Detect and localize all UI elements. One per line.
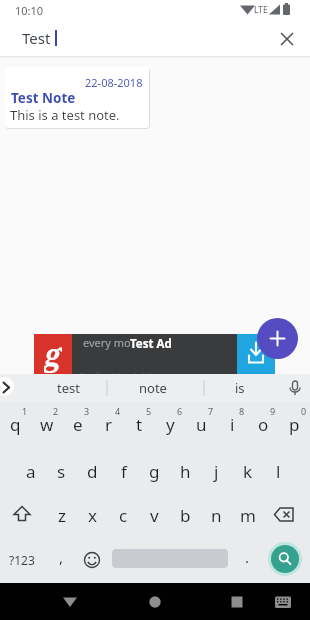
button[interactable] <box>223 588 251 616</box>
button[interactable]: a <box>15 458 46 484</box>
staticText: test <box>57 379 80 397</box>
staticText: m <box>240 504 256 527</box>
staticText: g <box>149 460 160 483</box>
staticText: h <box>180 460 191 483</box>
button[interactable]: q <box>0 411 31 437</box>
button[interactable]: test <box>38 375 98 401</box>
staticText: e <box>73 413 83 436</box>
button[interactable]: 22-08-2018 <box>5 67 149 128</box>
staticText: y <box>166 413 175 436</box>
button[interactable]: . <box>234 544 260 570</box>
button[interactable]: n <box>201 502 232 528</box>
staticText: 10:10 <box>15 3 44 18</box>
staticText: every mo <box>83 335 131 350</box>
staticText: 6 <box>177 405 183 417</box>
staticText: 8 <box>239 405 245 417</box>
staticText: j <box>214 460 219 483</box>
button[interactable]: v <box>139 502 170 528</box>
staticText: f <box>121 460 127 483</box>
staticText: c <box>119 504 128 527</box>
button[interactable] <box>270 501 298 529</box>
staticText: r <box>105 413 113 436</box>
button[interactable]: w <box>31 411 62 437</box>
button[interactable]: l <box>263 458 294 484</box>
button[interactable]: , <box>48 544 74 570</box>
button[interactable]: d <box>77 458 108 484</box>
staticText: 9 <box>270 405 276 417</box>
button[interactable]: b <box>170 502 201 528</box>
button[interactable] <box>237 334 275 374</box>
staticText: Test <box>22 28 51 48</box>
staticText: India No.1 Mc <box>80 369 159 374</box>
staticText: o <box>258 413 269 436</box>
button[interactable] <box>8 501 36 529</box>
button[interactable]: o <box>248 411 279 437</box>
staticText: LTE <box>254 4 268 16</box>
staticText: w <box>40 413 54 436</box>
button[interactable]: ?123 <box>2 547 42 573</box>
staticText: z <box>58 504 66 527</box>
staticText: p <box>289 413 300 436</box>
staticText: Test Ad <box>130 336 172 349</box>
button[interactable]: s <box>46 458 77 484</box>
staticText: This is a test note. <box>10 106 120 124</box>
button[interactable]: g <box>34 334 275 374</box>
button[interactable]: is <box>215 375 265 401</box>
staticText: b <box>180 504 191 527</box>
staticText: note <box>139 379 167 397</box>
staticText: s <box>57 460 66 483</box>
button[interactable]: x <box>77 502 108 528</box>
staticText: q <box>10 413 21 436</box>
staticText: l <box>276 460 281 483</box>
staticText: is <box>235 379 245 397</box>
button[interactable] <box>271 545 299 573</box>
button[interactable]: g <box>139 458 170 484</box>
staticText: 4 <box>115 405 121 417</box>
button[interactable]: note <box>123 375 183 401</box>
button[interactable]: y <box>155 411 186 437</box>
button[interactable]: m <box>232 502 263 528</box>
button[interactable] <box>257 318 298 359</box>
staticText: 2 <box>53 405 59 417</box>
button[interactable] <box>277 29 297 49</box>
staticText: d <box>87 460 98 483</box>
staticText: 7 <box>208 405 214 417</box>
staticText: . <box>245 547 250 567</box>
staticText: k <box>243 460 253 483</box>
staticText: x <box>88 504 97 527</box>
staticText: , <box>59 547 64 567</box>
button[interactable]: h <box>170 458 201 484</box>
button[interactable] <box>78 546 106 574</box>
button[interactable]: u <box>186 411 217 437</box>
button[interactable]: p <box>279 411 310 437</box>
staticText: 3 <box>84 405 90 417</box>
staticText: v <box>150 504 159 527</box>
staticText: 22-08-2018 <box>85 75 143 90</box>
button[interactable] <box>141 588 169 616</box>
button[interactable]: t <box>124 411 155 437</box>
staticText: u <box>196 413 207 436</box>
button[interactable]: z <box>46 502 77 528</box>
staticText: 0 <box>301 405 307 417</box>
button[interactable]: j <box>201 458 232 484</box>
button[interactable]: e <box>62 411 93 437</box>
button[interactable] <box>269 588 297 616</box>
button[interactable]: r <box>93 411 124 437</box>
button[interactable]: f <box>108 458 139 484</box>
button[interactable] <box>0 22 310 56</box>
button[interactable]: i <box>217 411 248 437</box>
staticText: g <box>44 334 62 374</box>
staticText: t <box>136 413 143 436</box>
button[interactable]: k <box>232 458 263 484</box>
staticText: n <box>211 504 222 527</box>
staticText: Test Note <box>11 89 76 107</box>
staticText: 1 <box>22 405 28 417</box>
staticText: ?123 <box>9 552 35 568</box>
button[interactable]: c <box>108 502 139 528</box>
staticText: i <box>230 413 235 436</box>
button[interactable] <box>56 588 84 616</box>
staticText: a <box>26 460 36 483</box>
staticText: 5 <box>146 405 152 417</box>
